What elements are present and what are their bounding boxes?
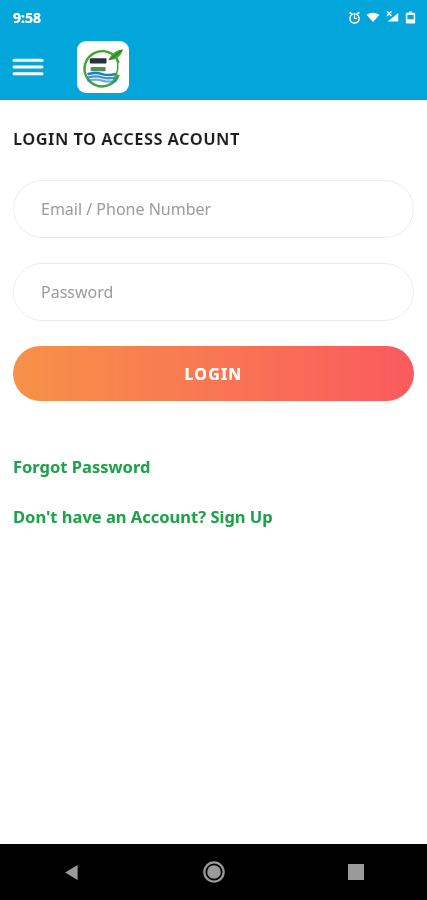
- button[interactable]: Open navigation menu: [8, 47, 48, 87]
- button[interactable]: LOGIN: [13, 346, 414, 401]
- staticText: Don't have an Account? Sign Up: [13, 505, 273, 527]
- staticText: LOGIN: [184, 363, 243, 385]
- button[interactable]: Forgot Password: [13, 455, 151, 477]
- staticText: 9:58: [13, 8, 41, 27]
- button[interactable]: Don't have an Account? Sign Up: [13, 505, 273, 527]
- button[interactable]: Back: [0, 844, 143, 900]
- staticText: LOGIN TO ACCESS ACOUNT: [13, 127, 240, 149]
- button[interactable]: Home: [143, 844, 285, 900]
- button[interactable]: Recent apps: [285, 844, 427, 900]
- button[interactable]: Password: [13, 263, 414, 321]
- button[interactable]: Email / Phone Number: [13, 180, 414, 238]
- button[interactable]: Nutri Fresh logo: [77, 41, 129, 93]
- staticText: Password: [41, 281, 114, 303]
- staticText: Forgot Password: [13, 455, 151, 477]
- staticText: Email / Phone Number: [41, 198, 212, 220]
